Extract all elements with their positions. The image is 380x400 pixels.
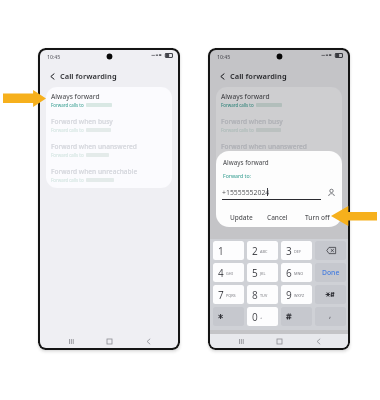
staticText: Done	[322, 268, 340, 277]
button[interactable]: Star	[213, 307, 244, 326]
staticText: 0	[252, 310, 258, 324]
button[interactable]: 2	[247, 241, 278, 260]
button[interactable]: Recents	[233, 334, 249, 348]
button[interactable]: Forward when unreachable	[46, 162, 172, 187]
button[interactable]: Backspace	[315, 241, 346, 260]
button[interactable]: Forward when unanswered	[216, 137, 342, 162]
button[interactable]: Home	[101, 334, 117, 348]
staticText: Forward calls to	[221, 152, 254, 158]
staticText: 9	[286, 288, 292, 302]
button[interactable]: 7	[213, 285, 244, 304]
button[interactable]: ,	[315, 307, 346, 326]
other: Symbols	[325, 291, 336, 298]
button[interactable]: Forward when busy	[46, 112, 172, 137]
staticText: Always forward	[221, 92, 270, 101]
button[interactable]: 6	[281, 263, 312, 282]
button[interactable]: Contacts	[325, 186, 337, 198]
other: Hash	[281, 307, 312, 326]
staticText: 4	[218, 266, 224, 280]
button[interactable]: Forward when busy	[216, 112, 342, 137]
staticText: 3	[286, 244, 292, 258]
staticText: Forward when unreachable	[51, 167, 138, 176]
staticText: PQRS	[226, 293, 236, 298]
button[interactable]: 5	[247, 263, 278, 282]
staticText: Always forward	[51, 92, 100, 101]
staticText: Turn off	[305, 213, 330, 222]
button[interactable]: Back	[310, 334, 326, 348]
staticText: JKL	[260, 271, 266, 276]
staticText: Forward when unreachable	[221, 167, 308, 176]
staticText: Forward calls to	[51, 177, 84, 183]
staticText: +15555552024	[222, 188, 270, 197]
button[interactable]: Back	[48, 72, 57, 81]
staticText: Forward calls to	[221, 177, 254, 183]
button[interactable]: 8	[247, 285, 278, 304]
staticText: DEF	[294, 249, 301, 254]
staticText: Forward when unanswered	[221, 142, 307, 151]
staticText: Forward calls to	[51, 152, 84, 158]
staticText: Forward calls to	[221, 127, 254, 133]
staticText: 8	[252, 288, 258, 302]
staticText: ABC	[260, 249, 268, 254]
staticText: MNO	[294, 271, 304, 276]
button[interactable]: Back	[140, 334, 156, 348]
button[interactable]: Home	[271, 334, 287, 348]
button[interactable]: Symbols	[315, 285, 346, 304]
staticText: Call forwarding	[230, 71, 287, 81]
button[interactable]: Back	[218, 72, 227, 81]
staticText: ,	[329, 309, 332, 320]
staticText: 7	[218, 288, 224, 302]
staticText: +	[260, 315, 263, 320]
button[interactable]: 4	[213, 263, 244, 282]
other: Backspace	[326, 247, 336, 254]
staticText: GHI	[226, 271, 233, 276]
button[interactable]: 9	[281, 285, 312, 304]
staticText: TUV	[260, 293, 268, 298]
staticText: 1	[218, 244, 224, 258]
button[interactable]: Recents	[63, 334, 79, 348]
button[interactable]: Turn off	[303, 211, 332, 224]
button[interactable]: Cancel	[265, 211, 290, 224]
staticText: 10:45	[47, 53, 61, 60]
button[interactable]: Always forward	[46, 87, 172, 112]
staticText: Update	[230, 213, 253, 222]
other: Star	[213, 307, 244, 326]
staticText: 6	[286, 266, 292, 280]
staticText: Forward calls to	[51, 127, 84, 133]
staticText: Cancel	[267, 213, 288, 222]
staticText: Forward calls to	[221, 102, 254, 108]
button[interactable]: Always forward	[216, 87, 342, 112]
staticText: Forward when unanswered	[51, 142, 137, 151]
staticText: Call forwarding	[60, 71, 117, 81]
button[interactable]: Forward when unanswered	[46, 137, 172, 162]
button[interactable]: Hash	[281, 307, 312, 326]
button[interactable]: Done	[315, 263, 346, 282]
button[interactable]: 1	[213, 241, 244, 260]
staticText: 2	[252, 244, 258, 258]
button[interactable]: 0	[247, 307, 278, 326]
staticText: 10:45	[217, 53, 231, 60]
staticText: Forward calls to	[51, 102, 84, 108]
button[interactable]: 3	[281, 241, 312, 260]
staticText: Forward to:	[223, 172, 251, 179]
button[interactable]: Update	[228, 211, 255, 224]
button[interactable]: Forward when unreachable	[216, 162, 342, 187]
staticText: Forward when busy	[51, 117, 113, 126]
staticText: Forward when busy	[221, 117, 283, 126]
staticText: Always forward	[223, 158, 269, 166]
staticText: 5	[252, 266, 258, 280]
staticText: WXYZ	[294, 293, 305, 298]
